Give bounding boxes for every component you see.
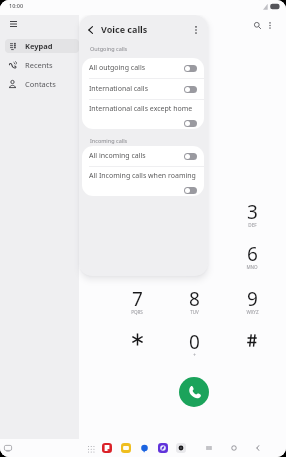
button[interactable]: All Incoming calls when roaming [82, 167, 204, 196]
button[interactable]: Camera [176, 443, 186, 453]
staticText: International calls [89, 84, 149, 94]
staticText: 9 [247, 286, 258, 312]
button[interactable]: 5 [174, 237, 214, 271]
staticText: 8 [189, 286, 200, 312]
button[interactable]: All apps [85, 443, 96, 454]
button[interactable]: Contacts [5, 77, 79, 91]
button[interactable]: All incoming calls [82, 146, 204, 166]
button[interactable]: Open navigation drawer [5, 16, 21, 32]
staticText: DEF [248, 222, 257, 228]
staticText: 6 [247, 241, 258, 267]
button[interactable]: Recents [5, 58, 79, 72]
button[interactable]: 3 [232, 195, 272, 229]
button[interactable]: 8 [174, 282, 214, 316]
staticText: Incoming calls [90, 137, 128, 144]
staticText: All Incoming calls when roaming [89, 171, 196, 181]
staticText: 7 [132, 286, 143, 312]
staticText: All incoming calls [89, 151, 146, 161]
button[interactable]: Back [251, 441, 265, 455]
button[interactable] [232, 325, 272, 359]
button[interactable]: Internet [158, 443, 168, 453]
button[interactable]: My Files [121, 443, 131, 453]
staticText: 3 [247, 199, 258, 225]
button[interactable]: Search [249, 17, 266, 34]
button[interactable]: Home [227, 441, 241, 455]
staticText: 0 [189, 329, 200, 355]
staticText: Voice calls [101, 23, 148, 35]
button[interactable]: Keypad [5, 39, 79, 53]
button[interactable] [117, 325, 157, 359]
staticText: MNO [246, 264, 258, 270]
button[interactable]: More options [187, 21, 204, 38]
button[interactable]: Messages [139, 443, 150, 454]
button[interactable]: Samsung Notes [102, 443, 112, 453]
staticText: Recents [25, 60, 53, 70]
staticText: All outgoing calls [89, 63, 146, 73]
button[interactable]: 0 [174, 325, 214, 359]
staticText: WXYZ [246, 309, 259, 315]
button[interactable]: 9 [232, 282, 272, 316]
button[interactable]: 6 [232, 237, 272, 271]
button[interactable]: International calls except home [82, 100, 204, 129]
button[interactable]: International calls [82, 79, 204, 99]
staticText: Keypad [25, 41, 53, 51]
button[interactable]: Taskbar settings [2, 442, 14, 454]
staticText: TUV [190, 309, 199, 315]
button[interactable]: All outgoing calls [82, 58, 204, 78]
staticText: PQRS [131, 309, 143, 315]
staticText: International calls except home [89, 104, 193, 114]
staticText: Outgoing calls [90, 45, 128, 52]
button[interactable]: Back [82, 21, 99, 38]
button[interactable]: 7 [117, 282, 157, 316]
button[interactable]: 2 [174, 195, 214, 229]
staticText: Contacts [25, 79, 56, 89]
button[interactable]: More options [261, 17, 278, 34]
button[interactable]: Call [179, 377, 209, 407]
button[interactable]: Recent apps [202, 441, 216, 455]
staticText: + [193, 352, 196, 358]
staticText: 10:00 [9, 2, 24, 9]
